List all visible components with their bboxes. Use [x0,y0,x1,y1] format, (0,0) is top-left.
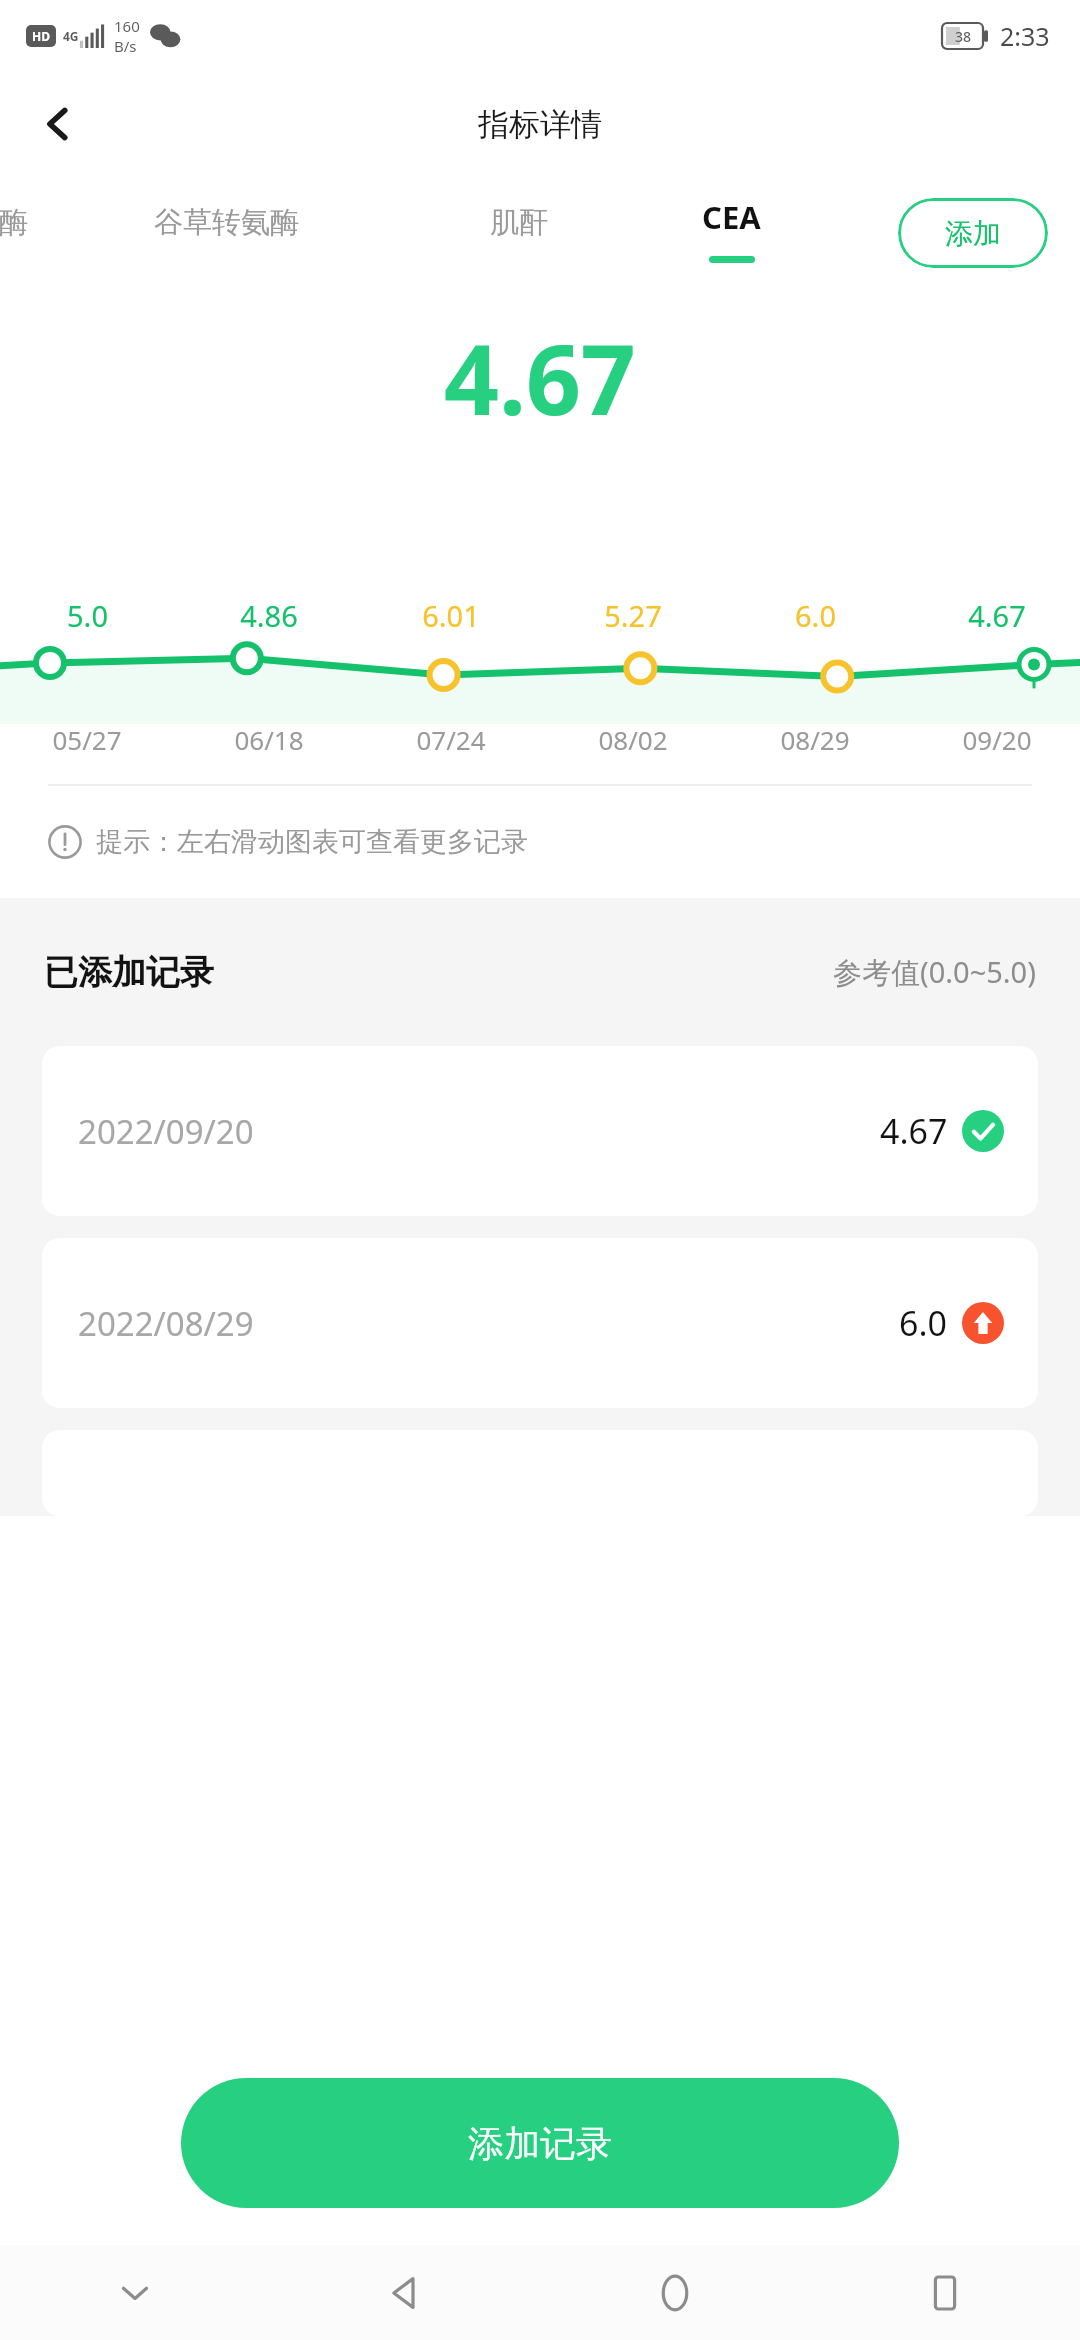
staticText: 2022/08/29 [78,1301,254,1346]
staticText: 4.67 [444,312,636,443]
staticText: 提示：左右滑动图表可查看更多记录 [96,825,528,859]
button[interactable]: 2022/09/20 [42,1046,1038,1216]
staticText: CEA [702,196,761,238]
button[interactable]: 添加记录 [181,2078,899,2208]
staticText: 谷草转氨酶 [154,204,299,241]
staticText: 08/29 [780,722,850,757]
staticText: 05/27 [52,722,122,757]
staticText: 6.0 [795,596,836,635]
staticText: HD [32,28,50,44]
staticText: 2:33 [1000,19,1050,53]
button[interactable]: Hide keyboard [0,2245,270,2340]
button[interactable]: 肌酐 [478,198,560,247]
staticText: 添加 [945,216,1001,251]
staticText: 4.86 [240,596,298,635]
staticText: 肌酐 [490,204,548,241]
staticText: 指标详情 [478,105,602,144]
staticText: 06/18 [234,722,304,757]
staticText: B/s [114,36,137,56]
staticText: 09/20 [962,722,1032,757]
staticText: 4.67 [968,596,1026,635]
button[interactable]: 添加 [898,198,1048,268]
staticText: 38 [955,27,972,46]
button[interactable]: 谷草转氨酶 [142,198,311,247]
staticText: 5.0 [67,596,108,635]
staticText: 6.0 [899,1300,948,1346]
button[interactable]: Recent apps [810,2245,1080,2340]
staticText: 2022/09/20 [78,1109,254,1154]
staticText: 5.27 [604,596,662,635]
staticText: 160 [114,16,140,36]
button[interactable]: CEA [690,196,773,263]
staticText: 已添加记录 [44,951,214,994]
button[interactable]: Home [540,2245,810,2340]
button[interactable]: 2022/08/29 [42,1238,1038,1408]
button[interactable]: 氨酶 [0,198,44,247]
staticText: 07/24 [416,722,486,757]
staticText: 4G [63,28,79,44]
staticText: 6.01 [422,596,480,635]
button[interactable]: Back [20,86,96,162]
staticText: 添加记录 [468,2121,612,2166]
staticText: 08/02 [598,722,668,757]
staticText: 氨酶 [0,204,28,241]
staticText: 参考值(0.0~5.0) [833,952,1036,992]
button[interactable]: Back [270,2245,540,2340]
staticText: 4.67 [880,1108,948,1154]
